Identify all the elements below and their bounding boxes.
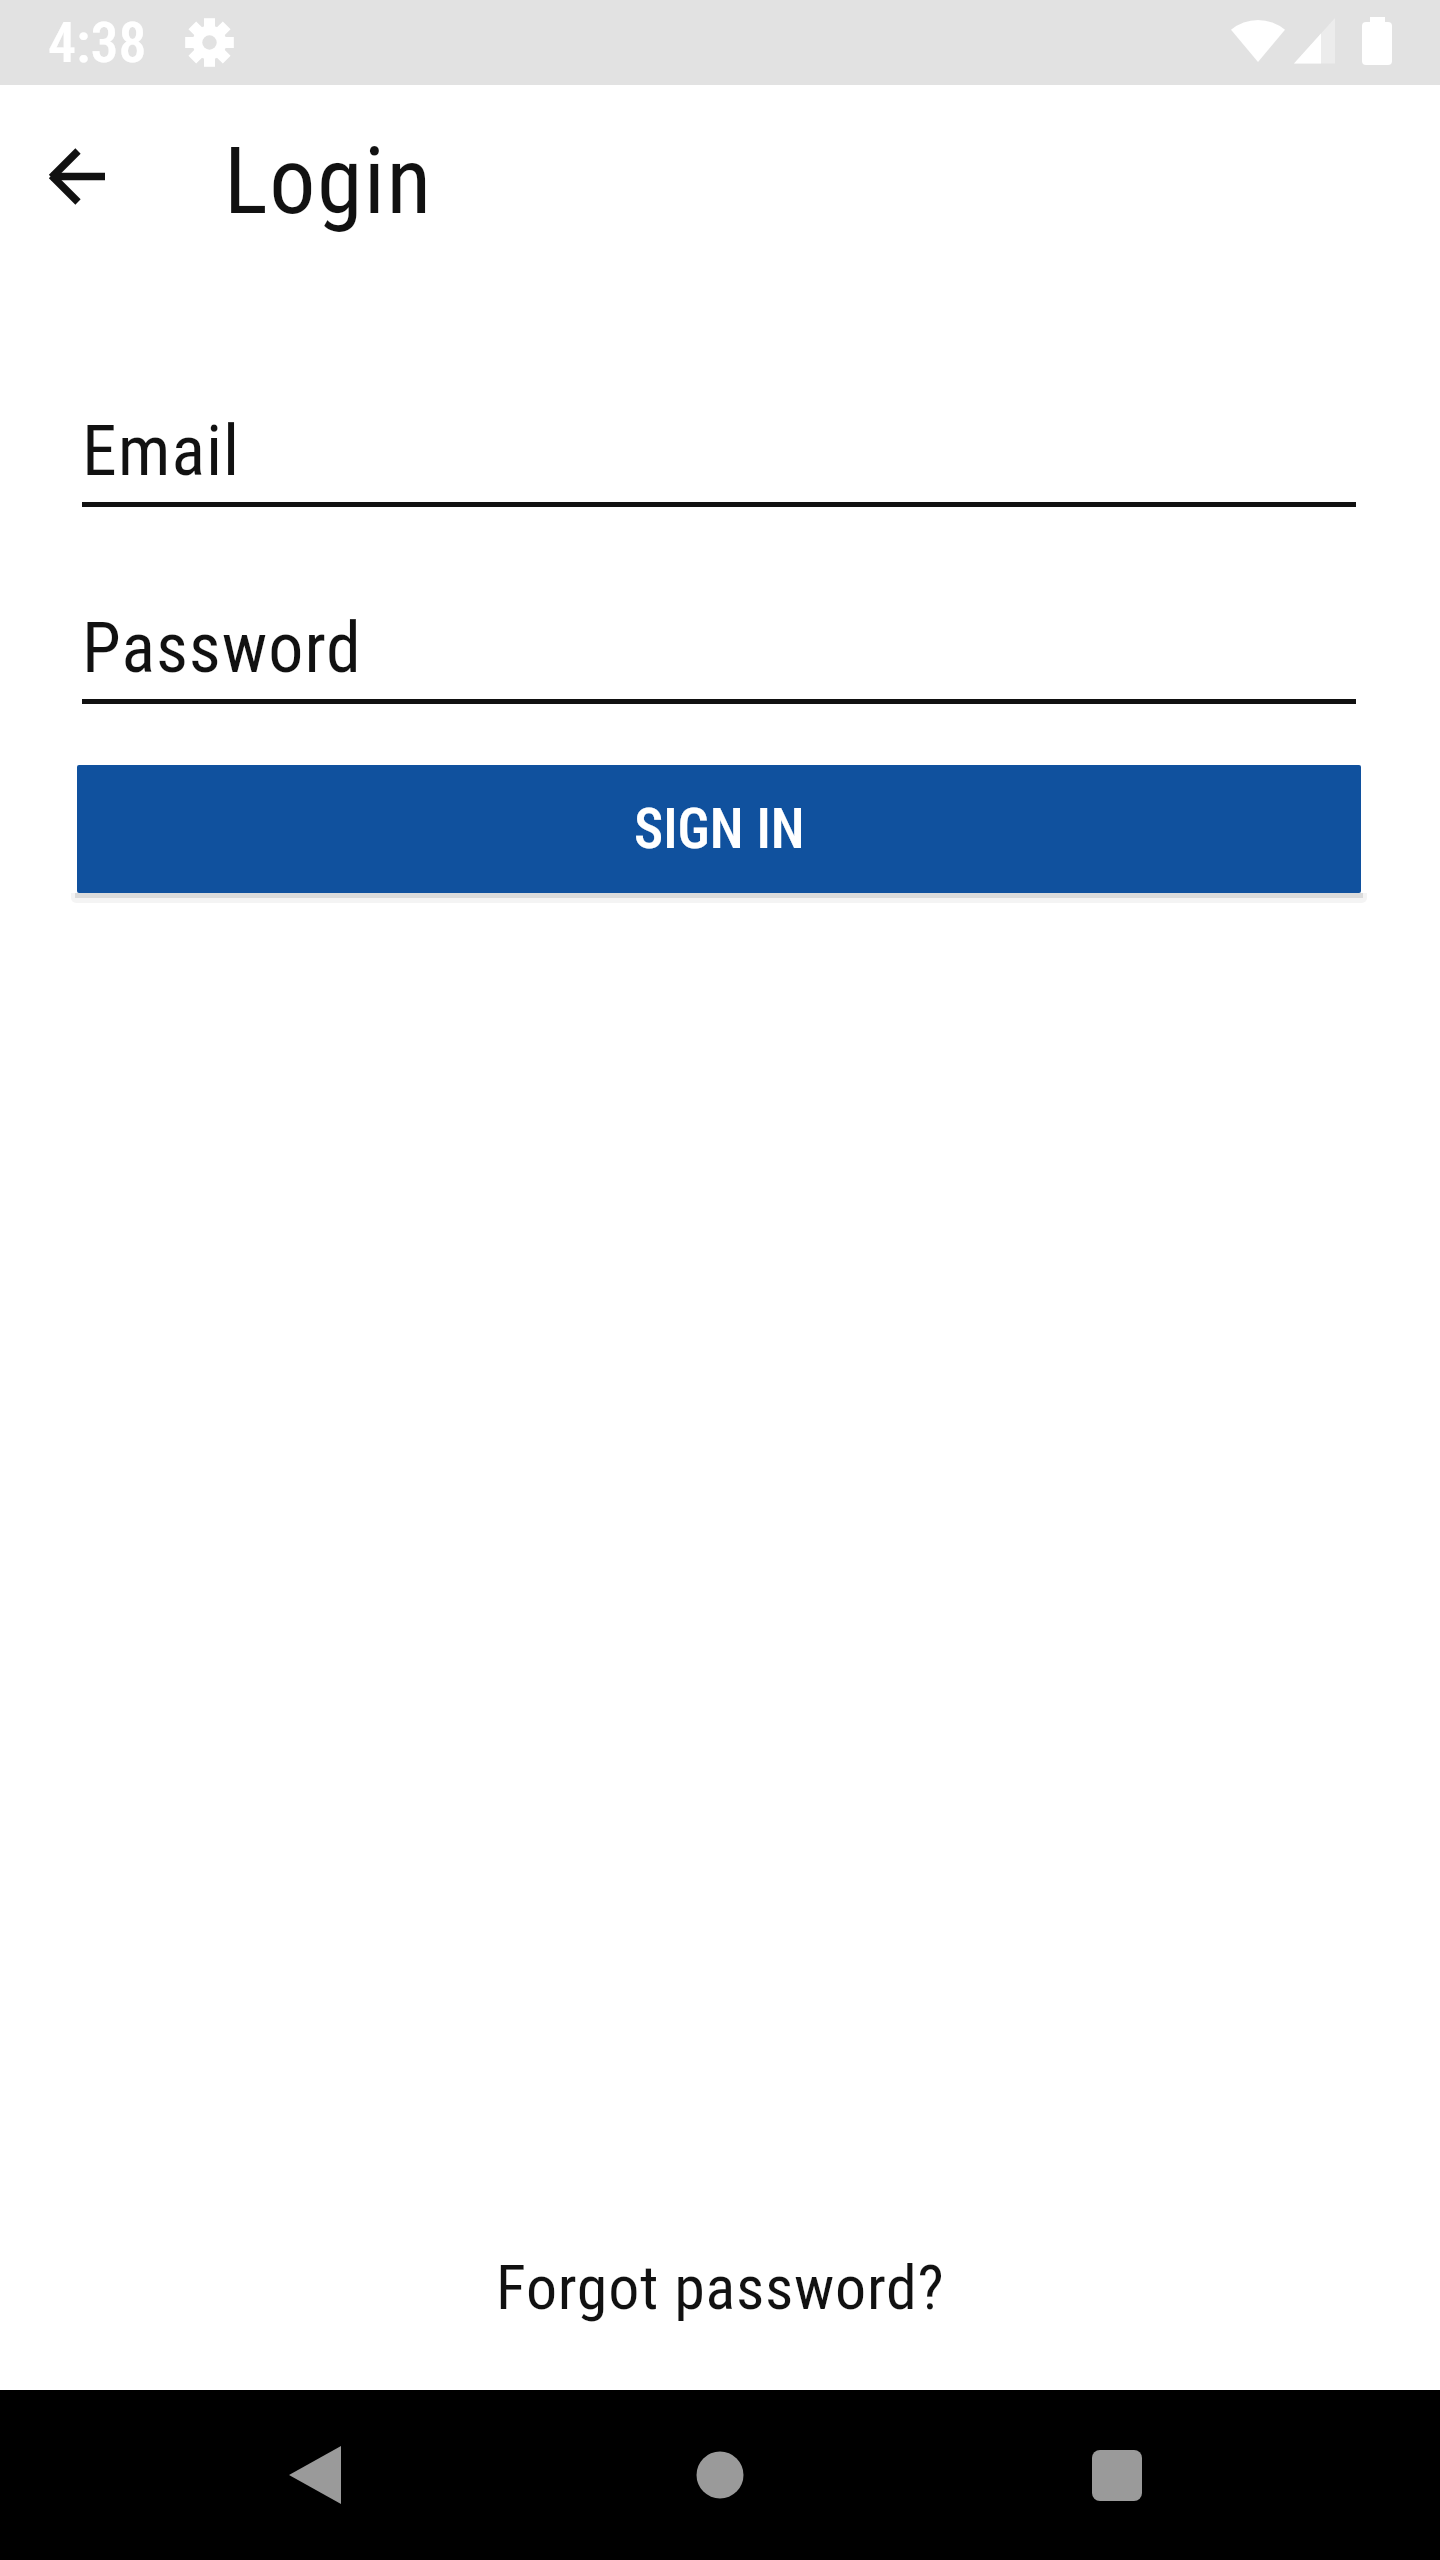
button[interactable]: SIGN IN xyxy=(77,765,1361,893)
staticText: Password xyxy=(82,607,362,689)
button[interactable]: Forgot password? xyxy=(496,2251,945,2324)
staticText: Email xyxy=(82,410,241,492)
button[interactable] xyxy=(255,2415,375,2535)
staticText: Login xyxy=(224,128,433,236)
button[interactable] xyxy=(36,135,120,219)
button[interactable] xyxy=(1057,2415,1177,2535)
button[interactable] xyxy=(660,2415,780,2535)
staticText: 4:38 xyxy=(48,10,147,76)
staticText: SIGN IN xyxy=(634,797,805,861)
